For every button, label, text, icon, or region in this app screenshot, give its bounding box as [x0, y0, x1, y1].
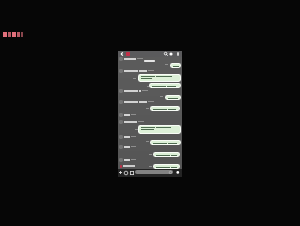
- button[interactable]: [139, 75, 180, 81]
- button[interactable]: Voice message: [175, 170, 180, 175]
- button[interactable]: [119, 120, 144, 125]
- button[interactable]: [139, 126, 180, 133]
- button[interactable]: [119, 158, 136, 163]
- button[interactable]: [151, 141, 180, 144]
- button[interactable]: [171, 64, 180, 67]
- button[interactable]: [119, 100, 154, 105]
- button[interactable]: Emoticon: [123, 170, 128, 175]
- button[interactable]: [119, 135, 136, 140]
- button[interactable]: [135, 170, 173, 174]
- button[interactable]: Call: [168, 51, 174, 57]
- button[interactable]: Add attachment: [118, 170, 123, 175]
- button[interactable]: [119, 113, 136, 118]
- button[interactable]: [150, 84, 180, 87]
- button[interactable]: [119, 69, 154, 74]
- button[interactable]: [119, 145, 136, 150]
- button[interactable]: [166, 96, 180, 99]
- button[interactable]: Sticker: [129, 170, 134, 175]
- button[interactable]: [154, 165, 179, 168]
- button[interactable]: Back: [119, 51, 125, 57]
- button[interactable]: [119, 89, 148, 94]
- button[interactable]: Search: [163, 51, 169, 57]
- button[interactable]: [119, 57, 143, 62]
- button[interactable]: Menu: [175, 51, 181, 57]
- button[interactable]: [154, 153, 179, 156]
- button[interactable]: [151, 107, 179, 110]
